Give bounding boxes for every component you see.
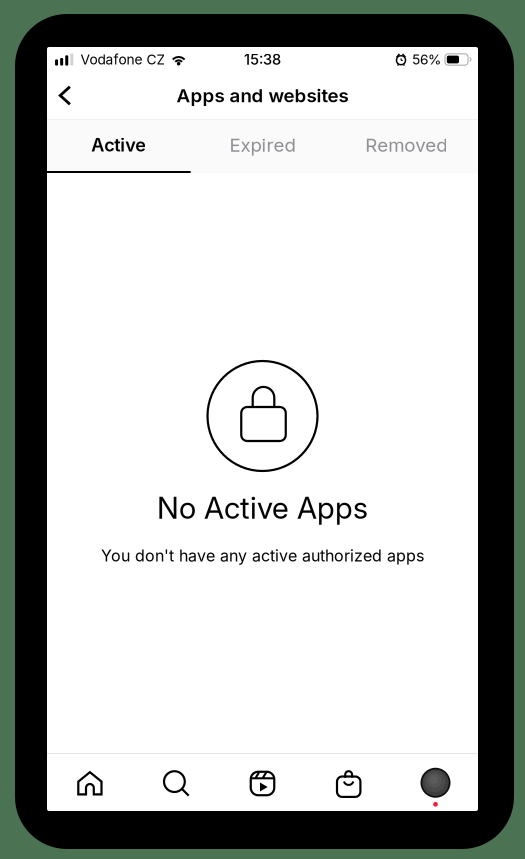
staticText: 15:38	[244, 51, 281, 68]
button[interactable]: Back	[52, 74, 78, 116]
staticText: Active	[91, 134, 146, 156]
button[interactable]: Profile	[392, 753, 478, 811]
staticText: No Active Apps	[157, 490, 368, 526]
staticText: You don't have any active authorized app…	[101, 546, 424, 565]
button[interactable]: Home	[47, 753, 133, 811]
button[interactable]: Active	[47, 119, 191, 173]
button[interactable]: Expired	[191, 119, 334, 173]
button[interactable]: Shop	[306, 753, 392, 811]
staticText: Removed	[365, 134, 447, 156]
button[interactable]: Removed	[334, 119, 478, 173]
staticText: Vodafone CZ	[80, 51, 165, 68]
button[interactable]: Reels	[219, 753, 306, 811]
button[interactable]: Search	[133, 753, 219, 811]
staticText: Expired	[229, 134, 295, 156]
staticText: Apps and websites	[176, 84, 348, 107]
staticText: 56%	[412, 51, 441, 68]
